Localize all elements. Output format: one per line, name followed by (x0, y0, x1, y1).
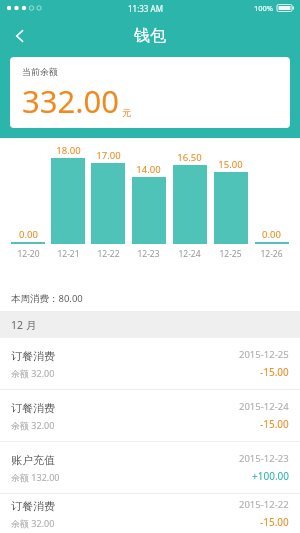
staticText: 2015-12-25 (239, 348, 289, 361)
button[interactable]: 当前余额 (10, 57, 290, 128)
button[interactable]: 订餐消费 (0, 338, 300, 389)
staticText: 余额 32.00 (11, 419, 55, 431)
staticText: -15.00 (260, 515, 289, 529)
staticText: 332.00 (22, 80, 119, 122)
staticText: 余额 32.00 (11, 367, 55, 379)
staticText: 12-22 (97, 248, 120, 260)
staticText: 12-21 (57, 248, 80, 260)
staticText: 账户充值 (11, 453, 55, 467)
staticText: 17.00 (96, 149, 121, 162)
staticText: 2015-12-23 (239, 452, 289, 465)
button[interactable]: 账户充值 (0, 442, 300, 493)
staticText: 100% (254, 3, 274, 13)
staticText: 余额 132.00 (11, 471, 60, 483)
staticText: -15.00 (260, 365, 289, 379)
staticText: 12-23 (137, 248, 160, 260)
staticText: 当前余额 (22, 66, 58, 77)
button[interactable]: 订餐消费 (0, 390, 300, 441)
staticText: -15.00 (260, 417, 289, 431)
button[interactable]: 订餐消费 (0, 494, 300, 533)
staticText: 12-24 (178, 248, 201, 260)
staticText: 11:33 AM (128, 3, 163, 14)
staticText: 15.00 (218, 158, 243, 171)
staticText: 12-26 (260, 248, 283, 260)
staticText: 12-25 (219, 248, 242, 260)
staticText: 2015-12-24 (239, 400, 289, 413)
staticText: 元 (122, 107, 131, 118)
staticText: 16.50 (177, 151, 202, 164)
staticText: 订餐消费 (11, 499, 55, 513)
staticText: 订餐消费 (11, 349, 55, 363)
button[interactable]: Back (0, 16, 40, 56)
staticText: 0.00 (262, 228, 281, 241)
staticText: 14.00 (136, 163, 161, 176)
staticText: 订餐消费 (11, 401, 55, 415)
staticText: 余额 32.00 (11, 517, 55, 529)
staticText: 钱包 (134, 26, 166, 46)
staticText: 12 月 (11, 318, 37, 332)
staticText: 2015-12-22 (239, 498, 289, 511)
staticText: 本周消费：80.00 (11, 292, 83, 305)
staticText: 0.00 (19, 228, 38, 241)
staticText: 12-20 (17, 248, 40, 260)
staticText: 18.00 (56, 144, 81, 157)
staticText: +100.00 (252, 469, 289, 483)
